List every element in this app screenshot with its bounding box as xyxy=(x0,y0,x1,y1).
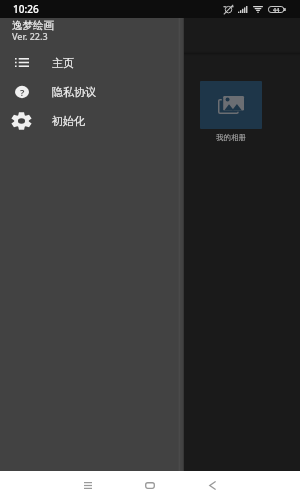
staticText: 44 xyxy=(273,6,280,13)
staticText: 隐私协议 xyxy=(52,85,96,99)
staticText: Ver. 22.3 xyxy=(12,30,48,42)
staticText: ? xyxy=(20,86,25,99)
other: Battery 44 percent xyxy=(268,6,286,13)
button[interactable]: Close navigation drawer xyxy=(184,18,300,471)
button[interactable] xyxy=(200,81,262,129)
other: Alarm off xyxy=(224,5,233,13)
staticText: 我的相册 xyxy=(216,133,246,142)
button[interactable]: ? xyxy=(0,77,184,106)
button[interactable]: Recent apps xyxy=(66,471,110,500)
staticText: 10:26 xyxy=(13,2,39,16)
button[interactable]: 主页 xyxy=(0,48,184,77)
staticText: 主页 xyxy=(52,56,74,70)
staticText: 初始化 xyxy=(52,114,85,128)
staticText: 逸梦绘画 xyxy=(12,19,54,32)
button[interactable]: Back xyxy=(190,471,234,500)
button[interactable]: 初始化 xyxy=(0,106,184,135)
button[interactable]: Home xyxy=(128,471,172,500)
